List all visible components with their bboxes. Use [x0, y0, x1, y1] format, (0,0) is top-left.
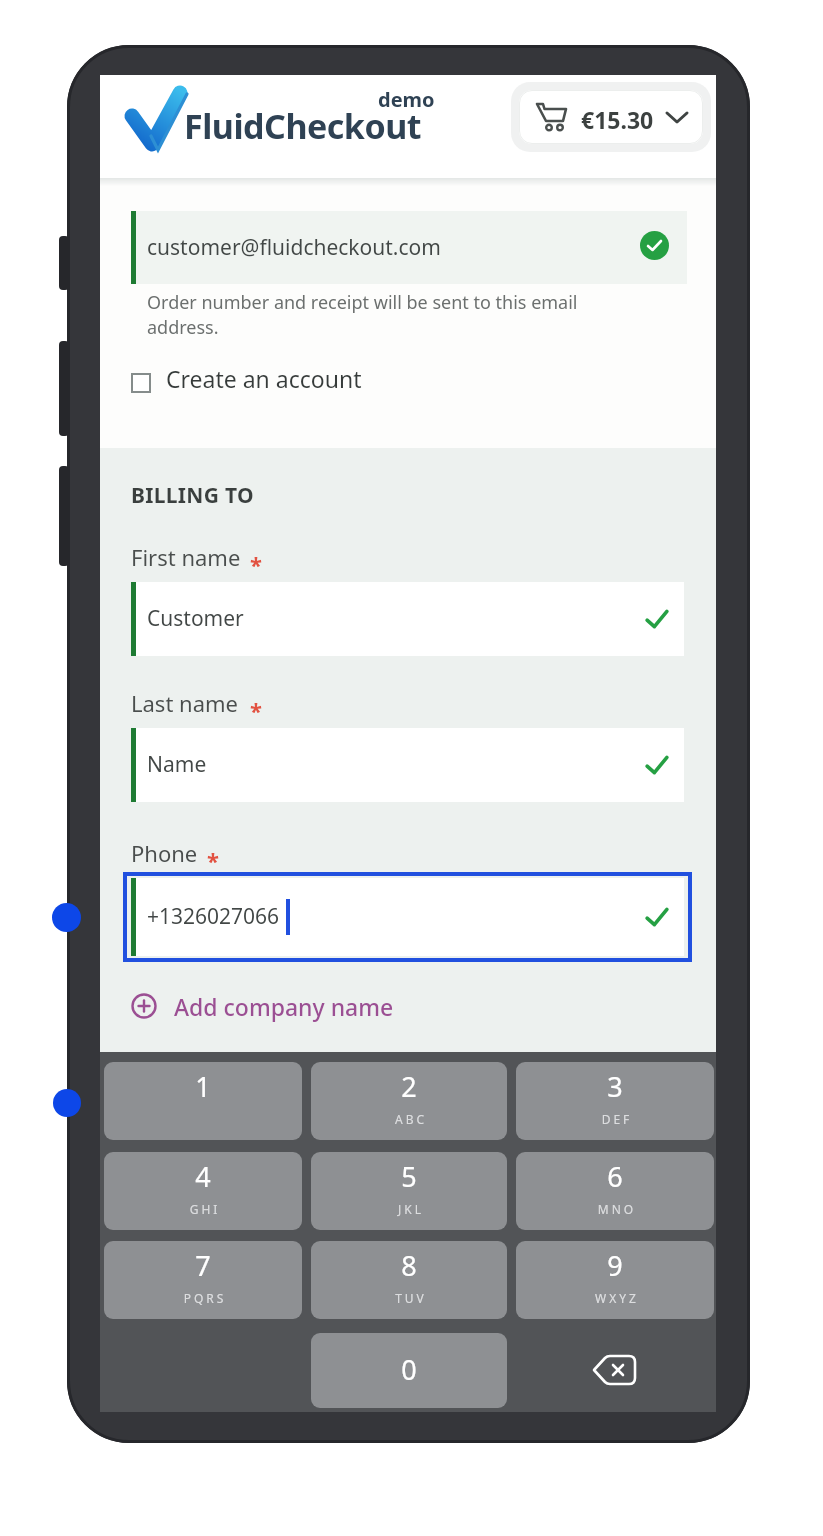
staticText: 5	[311, 1158, 507, 1196]
staticText: 3	[516, 1068, 714, 1106]
button[interactable]: 6	[516, 1152, 714, 1230]
staticText: 7	[104, 1247, 302, 1285]
staticText: €15.30	[581, 104, 654, 135]
button[interactable]: 8	[311, 1241, 507, 1319]
staticText: 4	[104, 1158, 302, 1196]
staticText: MNO	[518, 1201, 716, 1219]
button[interactable]: 1	[104, 1062, 302, 1140]
staticText: *	[250, 549, 262, 579]
staticText: ABC	[313, 1111, 509, 1129]
button[interactable]: 2	[311, 1062, 507, 1140]
staticText: 0	[311, 1351, 507, 1389]
staticText: Phone	[131, 838, 198, 868]
staticText: First name	[131, 542, 241, 572]
button[interactable]: 5	[311, 1152, 507, 1230]
button[interactable]	[580, 1345, 650, 1395]
button[interactable]: +1326027066	[131, 878, 684, 956]
staticText: TUV	[313, 1290, 509, 1308]
button[interactable]: 7	[104, 1241, 302, 1319]
staticText: DEF	[518, 1111, 716, 1129]
staticText: demo	[378, 86, 435, 113]
staticText: JKL	[313, 1201, 509, 1219]
button[interactable]: 3	[516, 1062, 714, 1140]
staticText: +1326027066	[147, 902, 280, 931]
staticText: 8	[311, 1247, 507, 1285]
staticText: Customer	[147, 604, 244, 633]
staticText: Add company name	[174, 991, 394, 1022]
staticText: 9	[516, 1247, 714, 1285]
staticText: *	[250, 695, 262, 725]
button[interactable]: €15.30	[519, 90, 703, 144]
staticText: Order number and receipt will be sent to…	[147, 290, 578, 315]
staticText: 1	[104, 1068, 302, 1106]
staticText: address.	[147, 315, 219, 340]
staticText: PQRS	[106, 1290, 304, 1308]
button[interactable]: 0	[311, 1333, 507, 1408]
staticText: 2	[311, 1068, 507, 1106]
staticText: Create an account	[166, 363, 362, 394]
staticText: BILLING TO	[131, 481, 254, 510]
staticText: GHI	[106, 1201, 304, 1219]
staticText: *	[207, 845, 219, 875]
button[interactable]: 9	[516, 1241, 714, 1319]
staticText: WXYZ	[518, 1290, 716, 1308]
button[interactable]	[131, 365, 151, 385]
staticText: Last name	[131, 688, 238, 718]
staticText: Name	[147, 750, 207, 779]
button[interactable]: Add company name	[131, 991, 394, 1022]
button[interactable]: customer@fluidcheckout.com	[131, 211, 687, 284]
staticText: customer@fluidcheckout.com	[147, 233, 441, 262]
button[interactable]: 4	[104, 1152, 302, 1230]
staticText: 6	[516, 1158, 714, 1196]
staticText: FluidCheckout	[184, 103, 422, 149]
button[interactable]: Customer	[131, 582, 684, 656]
button[interactable]: Name	[131, 728, 684, 802]
